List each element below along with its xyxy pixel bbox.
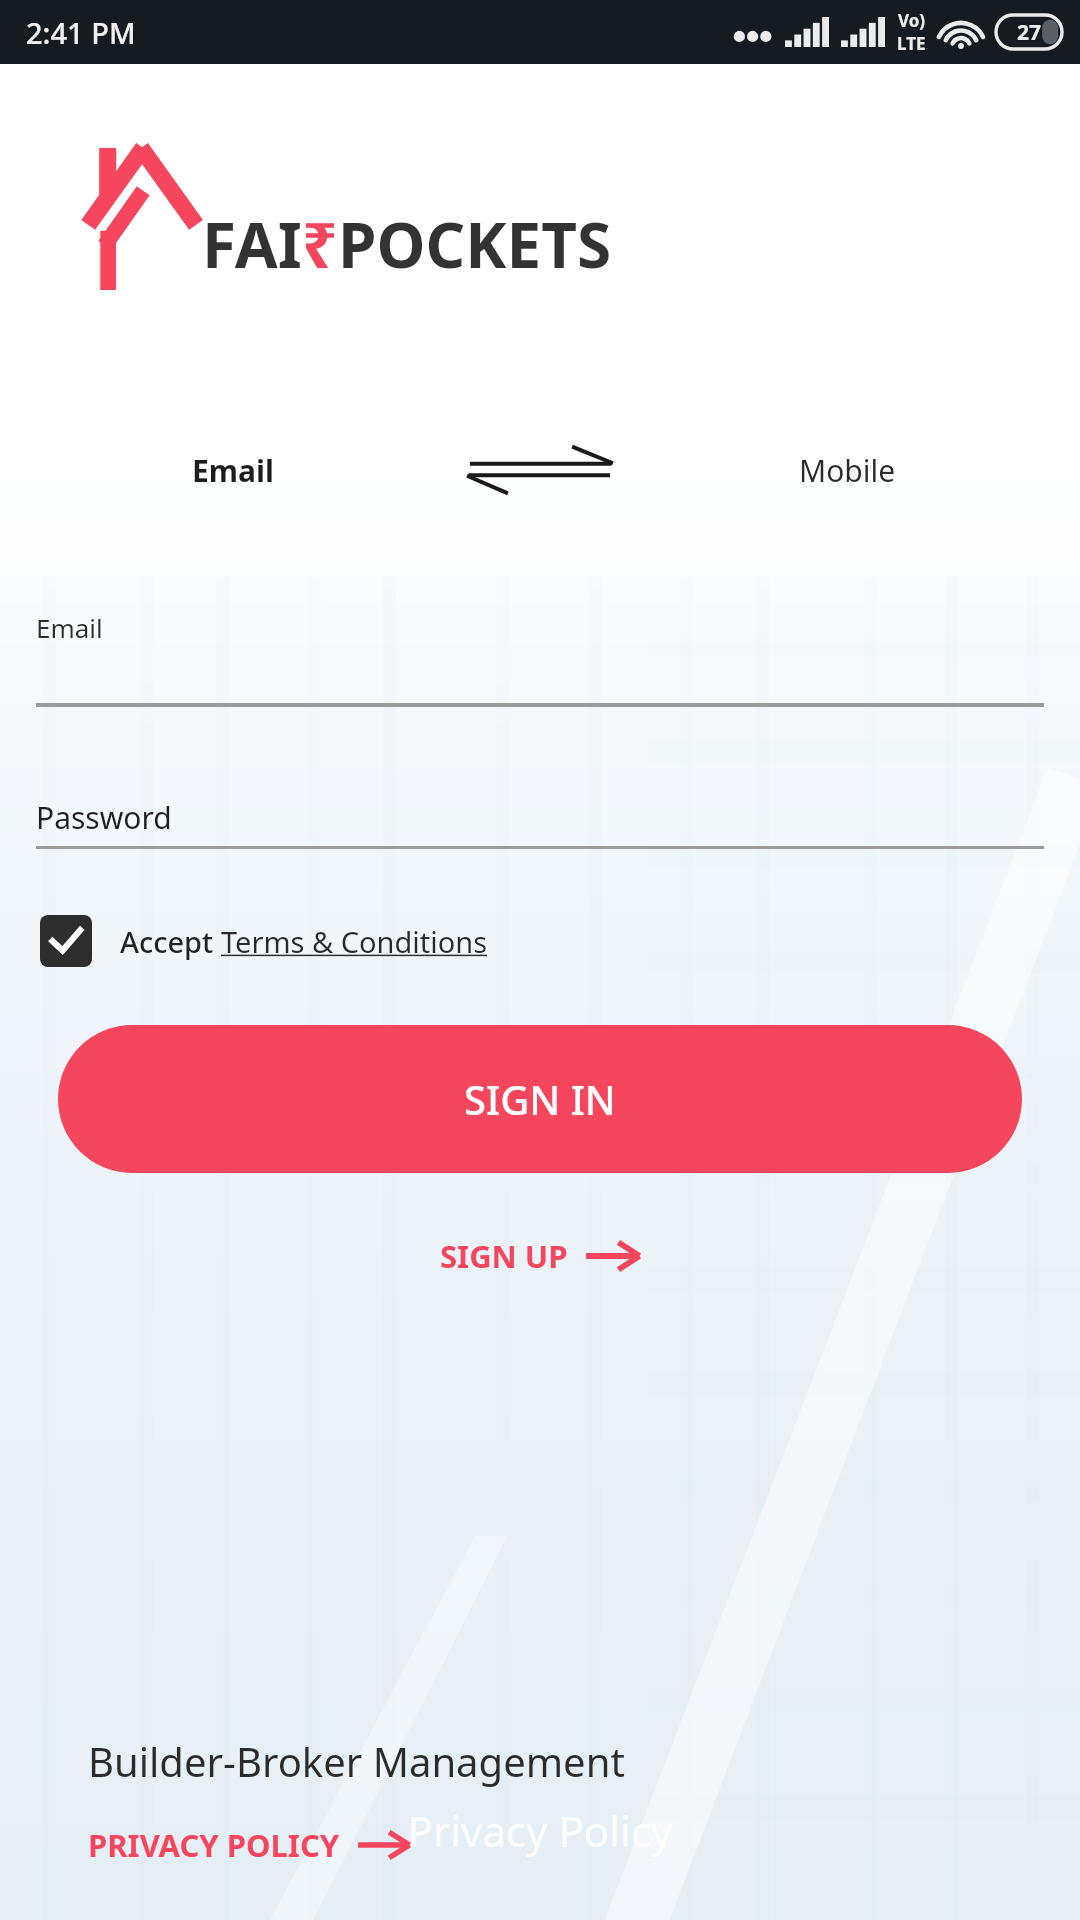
staticText: SIGN UP — [440, 1235, 568, 1277]
button[interactable]: Accept terms checkbox — [40, 915, 92, 967]
staticText: Email — [36, 610, 103, 645]
button[interactable]: Switch login method — [465, 440, 615, 500]
staticText: Terms & Conditions — [221, 922, 488, 961]
staticText: POCKETS — [338, 202, 612, 286]
staticText: Vo) — [898, 9, 926, 32]
button[interactable]: SIGN UP — [0, 1235, 1080, 1277]
button[interactable]: Mobile — [615, 450, 1080, 491]
staticText: Builder-Broker Management — [88, 1734, 625, 1788]
staticText: 27 — [1017, 18, 1042, 47]
button[interactable]: PRIVACY POLICY — [88, 1824, 410, 1866]
staticText: FAI — [202, 202, 302, 286]
staticText: Privacy Policy — [407, 1802, 673, 1859]
staticText: PRIVACY POLICY — [88, 1824, 340, 1866]
staticText: Email — [192, 450, 274, 491]
staticText: SIGN IN — [464, 1072, 616, 1126]
staticText: Mobile — [799, 450, 896, 491]
button[interactable]: SIGN IN — [58, 1025, 1022, 1173]
button[interactable]: Email — [0, 450, 465, 491]
staticText: ₹ — [302, 202, 338, 286]
staticText: Password — [36, 797, 172, 838]
button[interactable]: Email — [36, 610, 1044, 707]
button[interactable]: Password — [36, 797, 1044, 849]
staticText: LTE — [897, 32, 926, 55]
staticText: Accept — [120, 922, 221, 961]
button[interactable]: Terms & Conditions — [221, 922, 488, 961]
staticText: 2:41 PM — [26, 13, 136, 52]
